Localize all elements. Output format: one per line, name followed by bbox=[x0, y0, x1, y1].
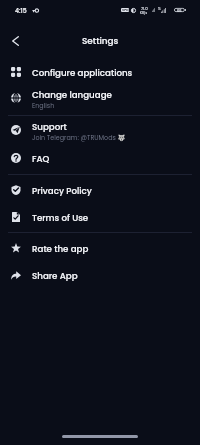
staticText: VPN bbox=[122, 8, 129, 12]
staticText: Settings bbox=[82, 35, 119, 47]
button[interactable]: Change language bbox=[0, 85, 200, 112]
staticText: Change language bbox=[32, 89, 112, 101]
button[interactable]: Privacy Policy bbox=[0, 177, 200, 204]
button[interactable]: Terms of Use bbox=[0, 204, 200, 231]
staticText: 5 bbox=[158, 6, 161, 12]
staticText: Support bbox=[32, 121, 67, 133]
button[interactable]: FAQ bbox=[0, 145, 200, 172]
staticText: Configure applications bbox=[32, 67, 133, 79]
staticText: Terms of Use bbox=[32, 212, 89, 224]
staticText: Privacy Policy bbox=[32, 185, 92, 197]
staticText: 71.0 bbox=[141, 6, 148, 11]
staticText: Join Telegram: @TRUMods 🐺 bbox=[32, 133, 126, 142]
button[interactable]: Back bbox=[5, 30, 26, 51]
button[interactable]: Configure applications bbox=[0, 59, 200, 86]
button[interactable]: Support bbox=[0, 117, 200, 144]
button[interactable]: Rate the app bbox=[0, 235, 200, 262]
staticText: 66 bbox=[177, 8, 182, 12]
staticText: Rate the app bbox=[32, 243, 89, 255]
staticText: FAQ bbox=[32, 153, 50, 165]
staticText: Share App bbox=[32, 270, 78, 282]
staticText: KB/s bbox=[140, 11, 148, 15]
staticText: English bbox=[32, 101, 55, 110]
button[interactable]: Share App bbox=[0, 262, 200, 289]
staticText: 4:15 bbox=[15, 6, 27, 15]
